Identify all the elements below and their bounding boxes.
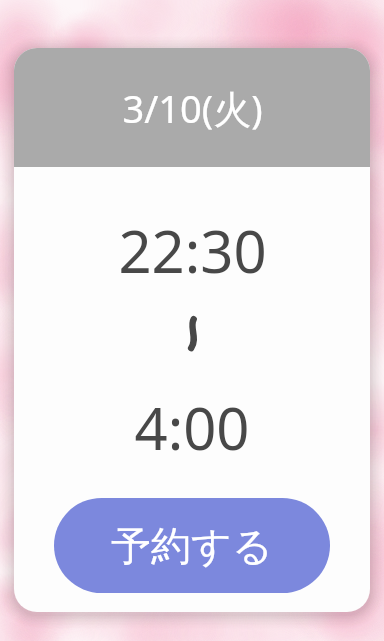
staticText: 予約する [111, 521, 273, 571]
staticText: 4:00 [134, 388, 250, 467]
button[interactable]: 予約する [54, 498, 330, 593]
staticText: 22:30 [118, 211, 267, 290]
staticText: 3/10(火) [122, 82, 263, 134]
